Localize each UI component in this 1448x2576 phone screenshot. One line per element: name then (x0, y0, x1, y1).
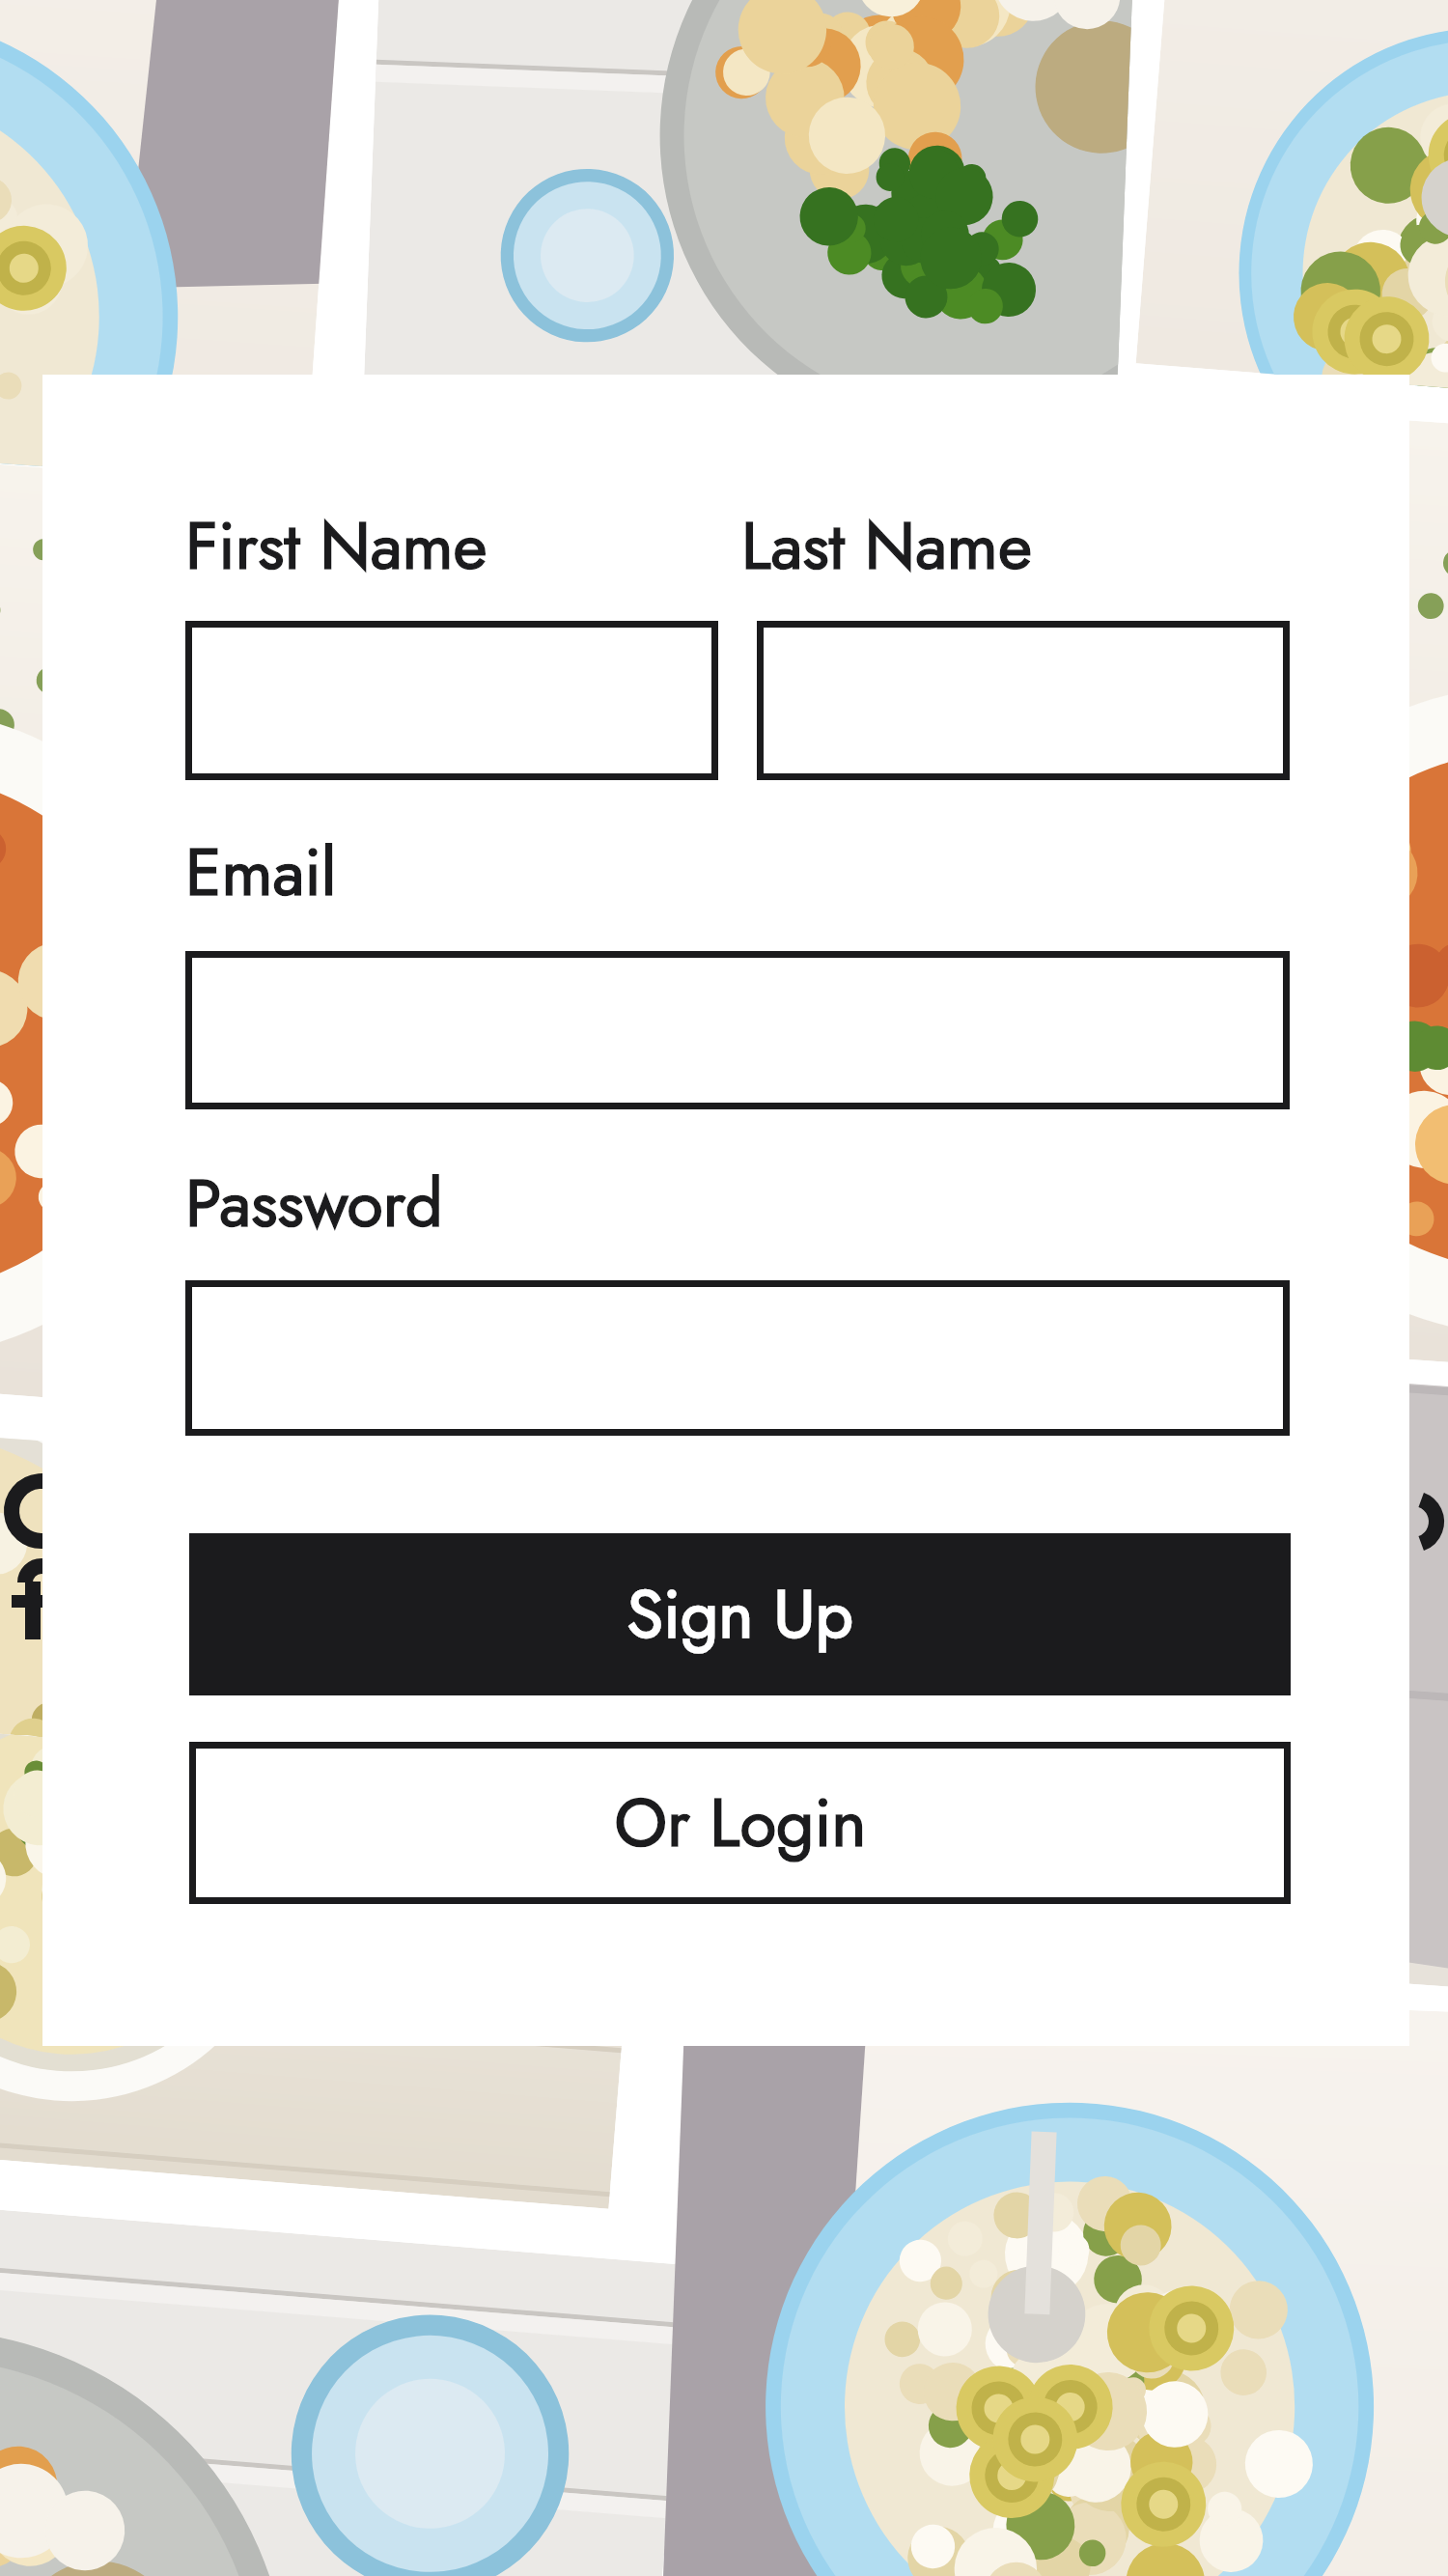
staticText: Password (185, 1156, 443, 1250)
staticText: First Name (185, 498, 487, 593)
button[interactable] (757, 621, 1290, 780)
button[interactable]: Or Login (189, 1742, 1291, 1904)
staticText: Sign Up (627, 1566, 853, 1663)
button[interactable] (185, 621, 718, 780)
staticText: First Name (185, 498, 487, 593)
staticText: Or Login (614, 1775, 867, 1871)
staticText: Email (185, 825, 337, 919)
button[interactable]: Sign Up (189, 1533, 1291, 1695)
staticText: Email (185, 825, 337, 919)
button[interactable] (185, 951, 1290, 1109)
staticText: Password (185, 1156, 443, 1250)
staticText: Last Name (741, 498, 1032, 593)
staticText: Sign Up (627, 1566, 853, 1663)
staticText: Last Name (741, 498, 1032, 593)
button[interactable] (185, 1280, 1290, 1436)
staticText: Or Login (614, 1775, 867, 1871)
